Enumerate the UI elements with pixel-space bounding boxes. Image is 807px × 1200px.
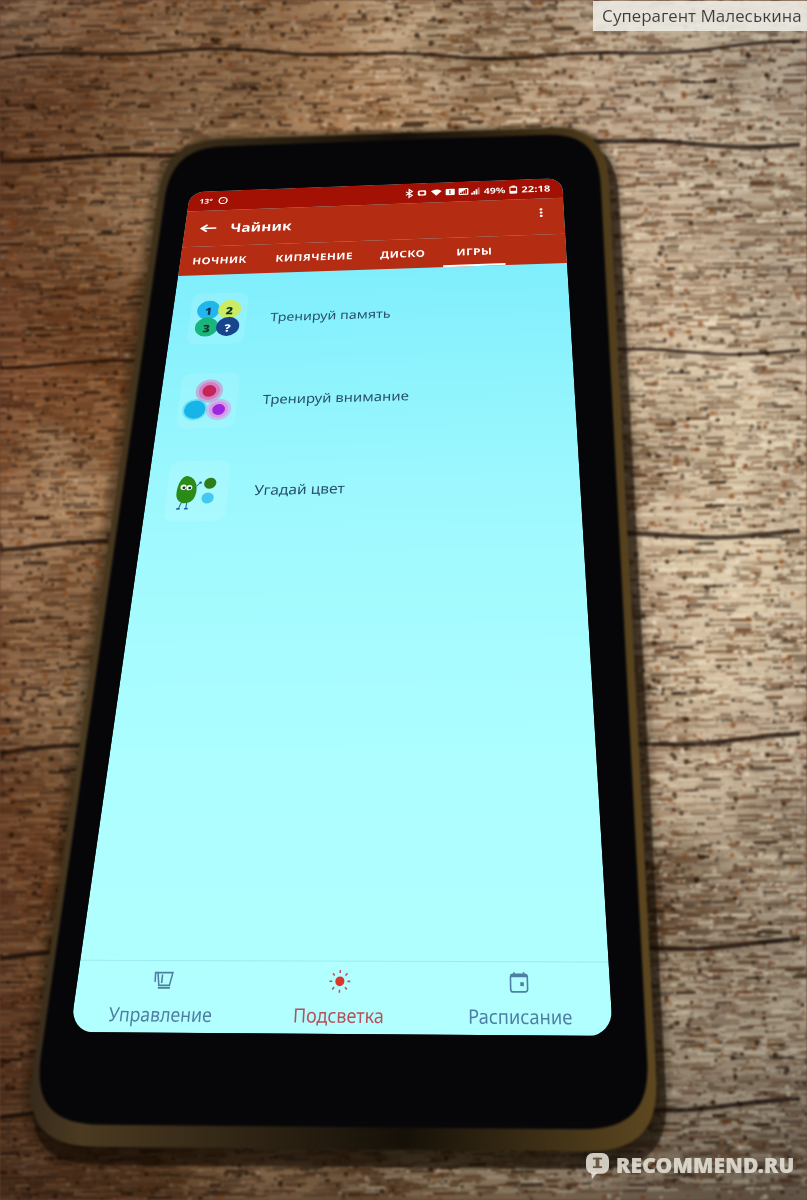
button[interactable]: ИГРЫ — [734, 206, 807, 309]
staticText: КИПЯЧЕНИЕ — [271, 235, 489, 280]
staticText: Угадай цвет — [272, 966, 500, 1019]
button[interactable]: ДИСКО — [533, 206, 722, 309]
staticText: 13° — [32, 20, 72, 54]
button[interactable]: Угадай цвет — [0, 906, 807, 1078]
staticText: Чайник — [132, 110, 310, 171]
staticText: Тренируй память — [272, 433, 600, 486]
button[interactable]: КИПЯЧЕНИЕ — [238, 206, 521, 309]
staticText: ИГРЫ — [777, 235, 807, 280]
staticText: Тренируй внимание — [272, 698, 655, 751]
staticText: ДИСКО — [565, 235, 691, 280]
button[interactable]: НОЧНИК — [3, 206, 222, 309]
staticText: 3 — [85, 469, 113, 515]
staticText: НОЧНИК — [35, 235, 191, 280]
staticText: ? — [143, 469, 171, 515]
button[interactable]: Тренируй внимание — [0, 638, 807, 810]
button[interactable]: 1 — [0, 373, 807, 545]
staticText: 1 — [85, 411, 113, 457]
staticText: Суперагент Малеськина — [602, 4, 802, 27]
staticText: 2 — [143, 411, 171, 457]
staticText: RECOMMEND.RU — [616, 1151, 795, 1180]
button[interactable]: Back — [24, 94, 116, 186]
